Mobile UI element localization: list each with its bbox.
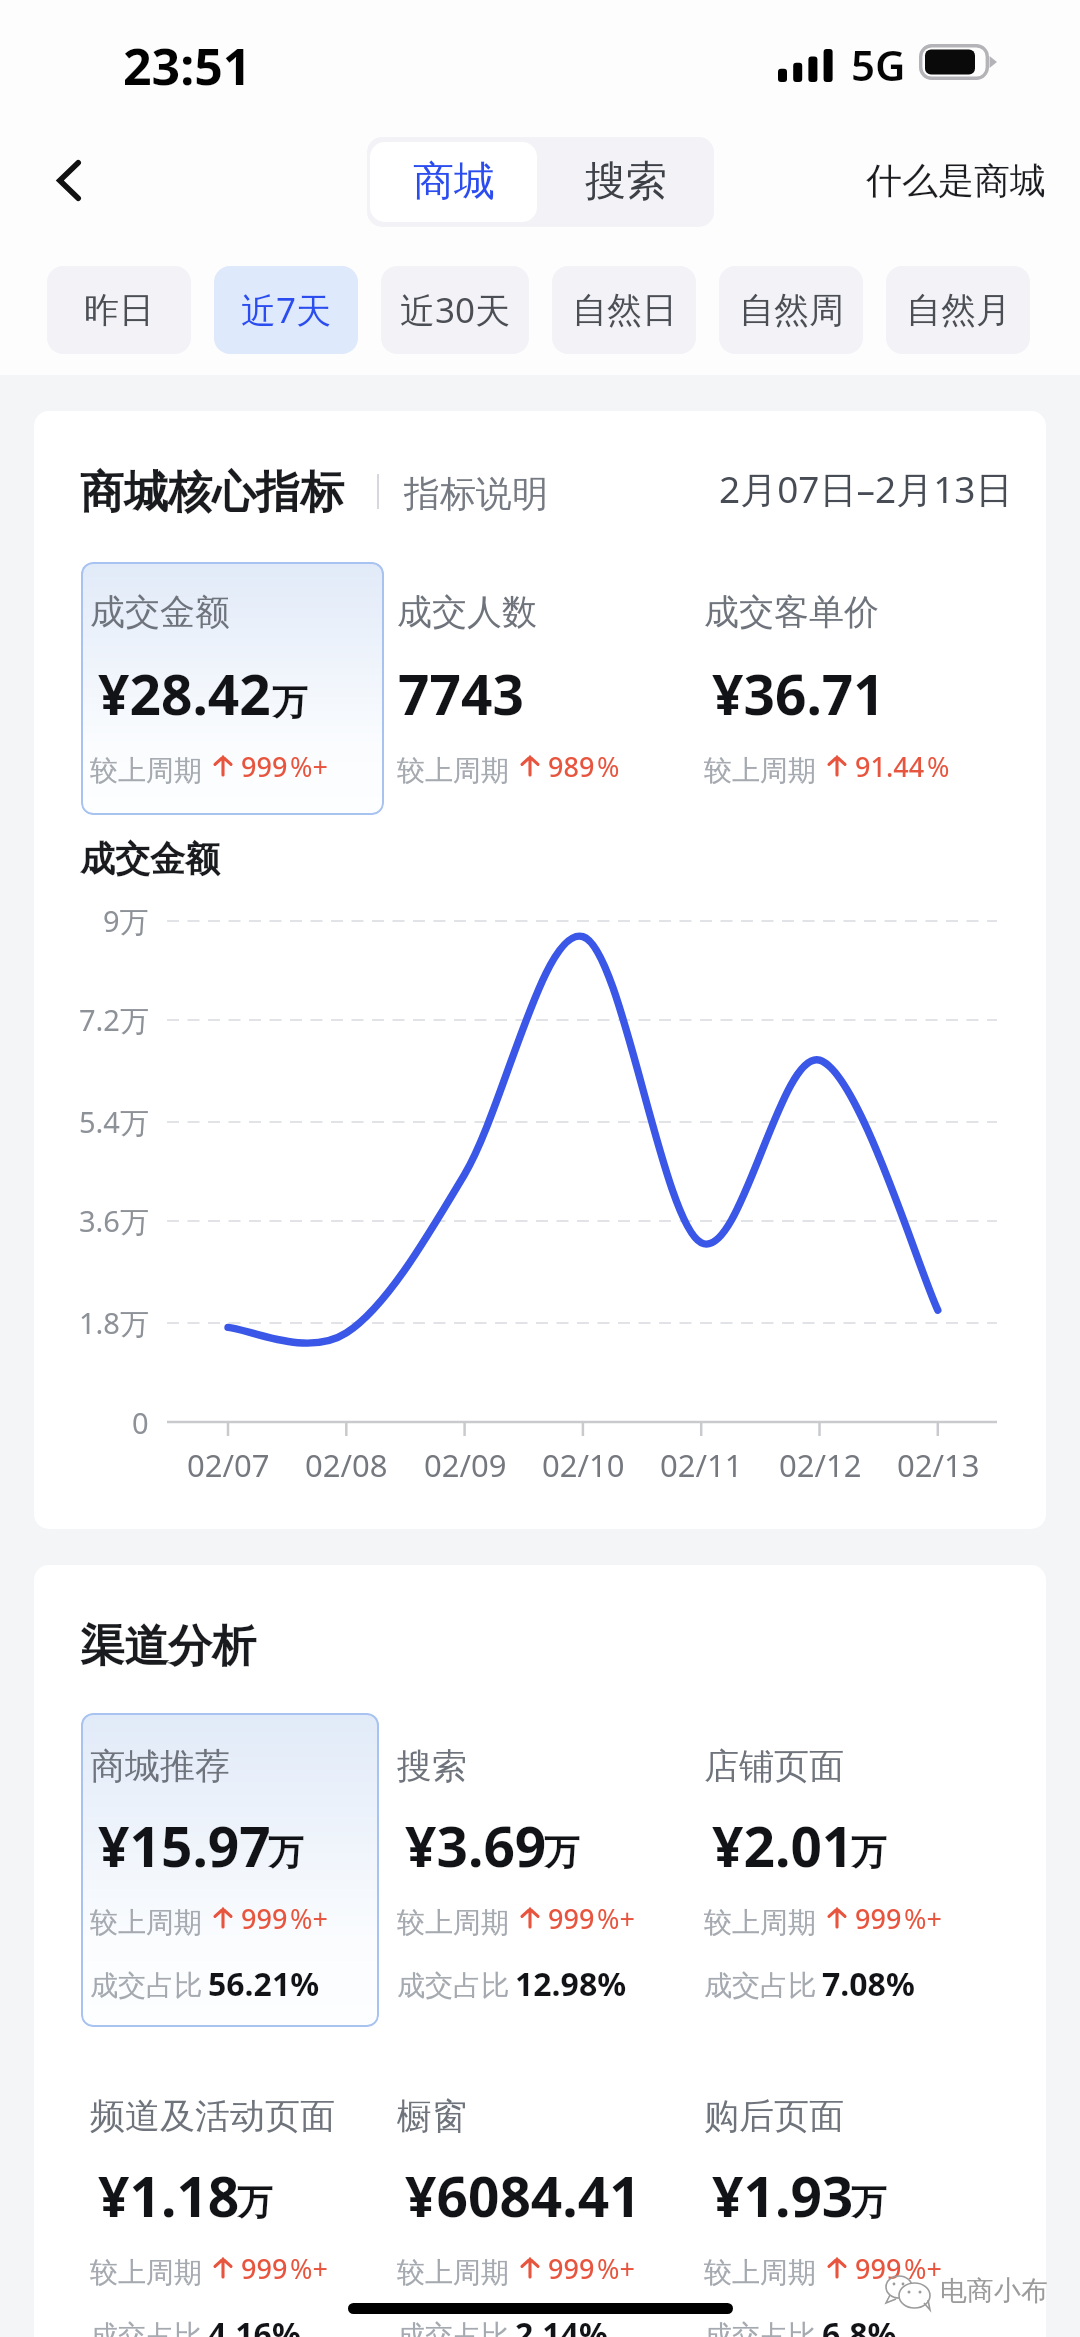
staticText: 成交占比 (704, 2318, 816, 2337)
staticText: 5G (851, 36, 906, 93)
staticText: 较上周期 (704, 753, 816, 788)
staticText: 成交客单价 (704, 590, 879, 634)
button[interactable]: 指标说明 (393, 462, 551, 520)
staticText: ¥28.42 (98, 656, 271, 731)
staticText: %+ (290, 1900, 328, 1937)
staticText: 较上周期 (90, 1905, 202, 1940)
staticText: 万 (272, 680, 307, 724)
button[interactable] (695, 1713, 993, 2027)
staticText: 02/13 (897, 1444, 980, 1486)
staticText: 成交人数 (397, 590, 537, 634)
staticText: 7743 (398, 656, 524, 731)
staticText: 12.98% (515, 1962, 627, 2006)
staticText: 自然月 (906, 288, 1011, 332)
staticText: %+ (904, 1900, 942, 1937)
staticText: 7.2万 (79, 1000, 149, 1040)
staticText: 999 (548, 2250, 595, 2287)
staticText: 成交占比 (397, 2318, 509, 2337)
staticText: % (927, 748, 950, 785)
staticText: 7.08% (822, 1962, 915, 2006)
button[interactable] (695, 2063, 993, 2337)
staticText: 2月07日–2月13日 (719, 463, 1013, 514)
staticText: ¥3.69 (405, 1808, 547, 1883)
staticText: 23:51 (123, 32, 252, 100)
staticText: 万 (544, 1830, 579, 1874)
staticText: ¥36.71 (712, 656, 885, 731)
button[interactable]: 搜索 (545, 142, 707, 222)
button[interactable]: 商城 (370, 142, 537, 222)
staticText: 较上周期 (397, 1905, 509, 1940)
staticText: 频道及活动页面 (90, 2094, 335, 2138)
button[interactable] (81, 1713, 379, 2027)
staticText: ¥1.18 (98, 2158, 240, 2233)
button[interactable]: 自然日 (552, 266, 696, 354)
staticText: 999 (241, 748, 288, 785)
staticText: 万 (268, 1830, 303, 1874)
staticText: 02/07 (187, 1444, 270, 1486)
staticText: %+ (290, 748, 328, 785)
staticText: 电商小布 (940, 2274, 1048, 2308)
button[interactable]: 什么是商城 (861, 146, 1051, 214)
staticText: 999 (241, 2250, 288, 2287)
staticText: 成交占比 (90, 2318, 202, 2337)
staticText: 3.6万 (79, 1201, 149, 1241)
staticText: 1.8万 (79, 1303, 149, 1343)
staticText: 指标说明 (404, 471, 548, 516)
button[interactable]: Back (21, 132, 117, 228)
staticText: 搜索 (397, 1744, 467, 1788)
staticText: 昨日 (84, 288, 154, 332)
button[interactable] (388, 2063, 686, 2337)
staticText: 较上周期 (90, 2255, 202, 2290)
button[interactable]: 昨日 (47, 266, 191, 354)
button[interactable] (81, 2063, 379, 2337)
staticText: 搜索 (585, 156, 667, 208)
staticText: ¥1.93 (712, 2158, 854, 2233)
staticText: 02/11 (660, 1444, 743, 1486)
staticText: 91.44 (855, 748, 925, 785)
staticText: 自然周 (739, 288, 844, 332)
staticText: 什么是商城 (866, 158, 1046, 203)
staticText: 较上周期 (704, 1905, 816, 1940)
staticText: 店铺页面 (704, 1744, 844, 1788)
staticText: 成交占比 (90, 1968, 202, 2003)
staticText: 9万 (103, 901, 149, 941)
staticText: 999 (855, 1900, 902, 1937)
button[interactable] (388, 1713, 686, 2027)
staticText: 4.16% (208, 2312, 301, 2337)
staticText: 6.8% (822, 2312, 897, 2337)
staticText: 成交金额 (80, 837, 220, 881)
staticText: 02/10 (542, 1444, 625, 1486)
staticText: 2.14% (515, 2312, 608, 2337)
staticText: 渠道分析 (80, 1619, 256, 1674)
staticText: 商城核心指标 (80, 465, 344, 520)
staticText: 999 (855, 2250, 902, 2287)
button[interactable]: 近7天 (214, 266, 358, 354)
staticText: 万 (851, 1830, 886, 1874)
staticText: %+ (597, 2250, 635, 2287)
staticText: ¥6084.41 (405, 2158, 641, 2233)
staticText: 02/09 (424, 1444, 507, 1486)
staticText: 购后页面 (704, 2094, 844, 2138)
button[interactable]: 自然月 (886, 266, 1030, 354)
button[interactable] (81, 562, 384, 815)
staticText: 近7天 (241, 286, 332, 334)
staticText: 成交占比 (704, 1968, 816, 2003)
staticText: 近30天 (400, 286, 511, 334)
staticText: 0 (132, 1403, 149, 1442)
staticText: 02/12 (779, 1444, 862, 1486)
staticText: ¥15.97 (98, 1808, 271, 1883)
staticText: 02/08 (305, 1444, 388, 1486)
staticText: % (597, 748, 620, 785)
staticText: 5.4万 (79, 1102, 149, 1142)
staticText: 成交占比 (397, 1968, 509, 2003)
button[interactable] (695, 562, 998, 815)
button[interactable] (388, 562, 691, 815)
staticText: 万 (851, 2180, 886, 2224)
staticText: 商城 (413, 156, 495, 208)
button[interactable]: 自然周 (719, 266, 863, 354)
staticText: 万 (237, 2180, 272, 2224)
staticText: 自然日 (572, 288, 677, 332)
staticText: 成交金额 (90, 590, 230, 634)
button[interactable]: 近30天 (381, 266, 529, 354)
staticText: %+ (904, 2250, 942, 2287)
